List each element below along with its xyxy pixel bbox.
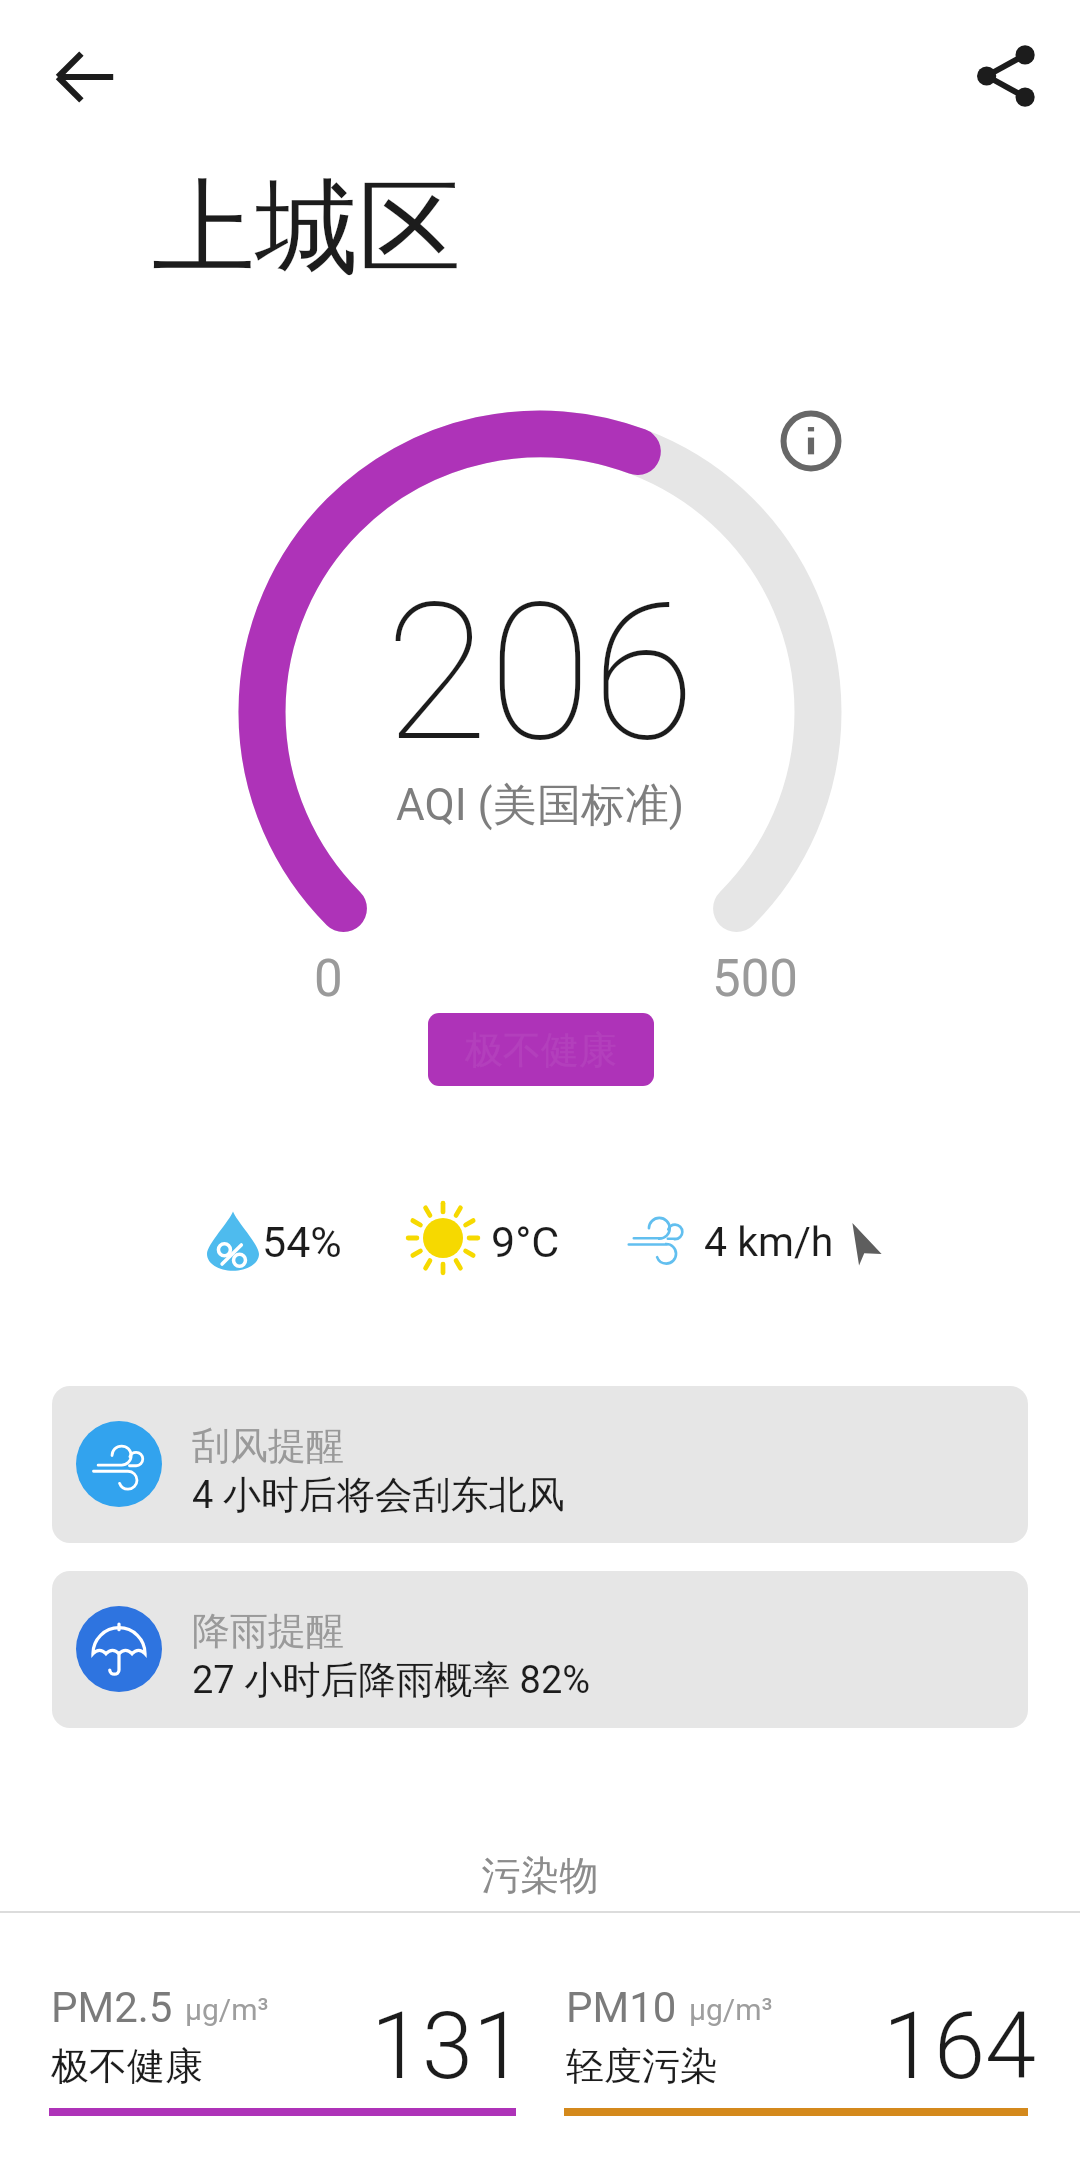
button[interactable]: Share — [958, 30, 1050, 122]
staticText: 污染物 — [0, 1851, 1080, 1900]
staticText: 降雨提醒 — [192, 1607, 344, 1655]
staticText: 轻度污染 — [566, 2042, 718, 2090]
staticText: 9°C — [491, 1217, 560, 1267]
staticText: 27 小时后降雨概率 82% — [192, 1656, 591, 1704]
staticText: 0 — [314, 949, 343, 1009]
button[interactable]: Back — [39, 31, 131, 123]
staticText: 上城区 — [152, 164, 461, 294]
button[interactable]: 极不健康 — [428, 1013, 654, 1086]
staticText: PM2.5 — [51, 1983, 173, 2032]
staticText: µg/m³ — [185, 1992, 269, 2027]
staticText: 刮风提醒 — [192, 1422, 344, 1470]
button[interactable]: 降雨提醒 — [52, 1571, 1028, 1728]
button[interactable]: PM10 — [564, 1954, 1080, 2175]
button[interactable]: PM2.5 — [49, 1954, 568, 2175]
staticText: 164 — [566, 1993, 1036, 2101]
staticText: 极不健康 — [465, 1026, 617, 1074]
button[interactable]: Info — [763, 393, 859, 489]
staticText: PM10 — [566, 1983, 677, 2032]
staticText: 500 — [712, 949, 798, 1009]
staticText: AQI (美国标准) — [0, 778, 1080, 833]
button[interactable]: 刮风提醒 — [52, 1386, 1028, 1543]
staticText: 4 km/h — [704, 1218, 834, 1266]
staticText: 极不健康 — [51, 2042, 203, 2090]
staticText: 54% — [262, 1217, 342, 1267]
staticText: 4 小时后将会刮东北风 — [192, 1471, 565, 1519]
staticText: 131 — [51, 1993, 524, 2101]
staticText: 206 — [0, 563, 1080, 784]
staticText: µg/m³ — [689, 1992, 773, 2027]
